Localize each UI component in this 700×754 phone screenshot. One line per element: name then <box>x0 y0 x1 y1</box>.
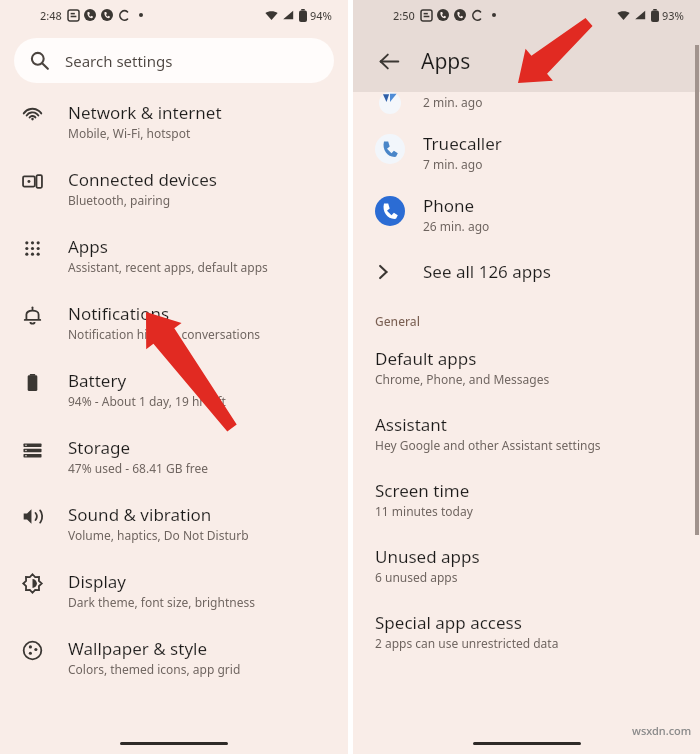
button[interactable]: Connected devices <box>0 143 348 210</box>
staticText: 26 min. ago <box>423 218 490 234</box>
staticText: 94% <box>310 8 332 23</box>
staticText: 6 unused apps <box>375 569 458 585</box>
staticText: Truecaller <box>423 132 502 155</box>
button[interactable]: Back <box>371 43 407 79</box>
staticText: Assistant <box>375 413 447 436</box>
staticText: Unused apps <box>375 545 480 568</box>
staticText: Assistant, recent apps, default apps <box>68 259 268 275</box>
staticText: Hey Google and other Assistant settings <box>375 437 601 453</box>
button[interactable]: Apps <box>0 210 348 277</box>
button[interactable]: Storage <box>0 411 348 478</box>
staticText: 2 apps can use unrestricted data <box>375 635 559 651</box>
staticText: Connected devices <box>68 168 218 191</box>
staticText: 94% - About 1 day, 19 hr left <box>68 393 226 409</box>
staticText: 11 minutes today <box>375 503 473 519</box>
button[interactable]: Sound & vibration <box>0 478 348 545</box>
staticText: Storage <box>68 436 131 459</box>
button[interactable]: Phone <box>353 172 700 234</box>
staticText: Battery <box>68 369 127 392</box>
staticText: Dark theme, font size, brightness <box>68 594 255 610</box>
staticText: Special app access <box>375 611 522 634</box>
button[interactable]: See all 126 apps <box>353 234 700 283</box>
staticText: See all 126 apps <box>423 260 551 283</box>
staticText: Screen time <box>375 479 470 502</box>
button[interactable]: Network & internet <box>0 101 348 143</box>
staticText: Default apps <box>375 347 477 370</box>
staticText: Display <box>68 570 126 593</box>
staticText: Mobile, Wi-Fi, hotspot <box>68 125 191 141</box>
staticText: Network & internet <box>68 101 222 124</box>
staticText: 7 min. ago <box>423 156 483 172</box>
staticText: Apps <box>68 235 108 258</box>
staticText: Sound & vibration <box>68 503 212 526</box>
staticText: Colors, themed icons, app grid <box>68 661 241 677</box>
staticText: Bluetooth, pairing <box>68 192 171 208</box>
button[interactable]: Display <box>0 545 348 612</box>
staticText: 47% used - 68.41 GB free <box>68 460 209 476</box>
staticText: Chrome, Phone, and Messages <box>375 371 550 387</box>
button[interactable]: Unused apps <box>353 519 700 585</box>
button[interactable]: Truecaller <box>353 114 700 172</box>
staticText: Apps <box>421 47 471 76</box>
button[interactable]: Screen time <box>353 453 700 519</box>
button[interactable]: Special app access <box>353 585 700 651</box>
button[interactable]: Wallpaper & style <box>0 612 348 679</box>
staticText: Notifications <box>68 302 170 325</box>
staticText: Phone <box>423 194 475 217</box>
staticText: 2:50 <box>393 8 415 23</box>
staticText: 2:48 <box>40 8 62 23</box>
staticText: General <box>375 313 420 329</box>
button[interactable]: Search settings <box>14 38 334 83</box>
staticText: 93% <box>662 8 684 23</box>
staticText: Notification history, conversations <box>68 326 261 342</box>
button[interactable]: Default apps <box>353 329 700 387</box>
staticText: Volume, haptics, Do Not Disturb <box>68 527 249 543</box>
staticText: 2 min. ago <box>423 94 483 110</box>
staticText: Wallpaper & style <box>68 637 208 660</box>
button[interactable]: Notifications <box>0 277 348 344</box>
button[interactable]: Assistant <box>353 387 700 453</box>
staticText: Search settings <box>65 51 173 71</box>
staticText: wsxdn.com <box>632 723 692 738</box>
button[interactable]: Battery <box>0 344 348 411</box>
